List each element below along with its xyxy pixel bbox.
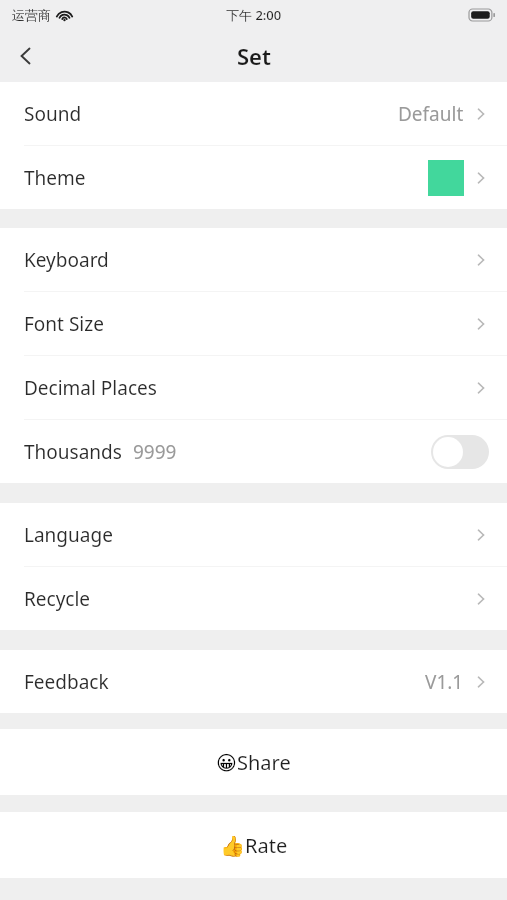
- button[interactable]: Keyboard: [0, 228, 507, 292]
- staticText: Keyboard: [24, 247, 109, 273]
- button[interactable]: 😀: [0, 729, 507, 795]
- staticText: Rate: [245, 832, 288, 859]
- staticText: Share: [237, 749, 291, 776]
- staticText: V1.1: [425, 669, 464, 695]
- button[interactable]: Feedback: [0, 650, 507, 713]
- button[interactable]: Recycle: [0, 567, 507, 630]
- staticText: 😀: [216, 751, 237, 774]
- button[interactable]: Back: [0, 30, 52, 82]
- staticText: Decimal Places: [24, 375, 157, 401]
- button[interactable]: Language: [0, 503, 507, 567]
- staticText: Feedback: [24, 669, 109, 695]
- staticText: Sound: [24, 101, 82, 127]
- other: Thousands separator toggle: [431, 435, 489, 469]
- staticText: Font Size: [24, 311, 104, 337]
- button[interactable]: Sound: [0, 82, 507, 146]
- staticText: 👍: [220, 834, 245, 857]
- button[interactable]: Theme: [0, 146, 507, 209]
- staticText: Thousands: [24, 439, 122, 465]
- staticText: Recycle: [24, 586, 91, 612]
- button[interactable]: Font Size: [0, 292, 507, 356]
- button[interactable]: Decimal Places: [0, 356, 507, 420]
- button[interactable]: Thousands: [0, 420, 507, 483]
- staticText: Default: [398, 101, 464, 127]
- button[interactable]: 👍: [0, 812, 507, 878]
- staticText: 9999: [133, 439, 177, 465]
- staticText: Language: [24, 522, 113, 548]
- staticText: 下午 2:00: [226, 6, 282, 24]
- staticText: 运营商: [12, 7, 51, 23]
- staticText: Theme: [24, 165, 86, 191]
- staticText: Set: [237, 41, 271, 71]
